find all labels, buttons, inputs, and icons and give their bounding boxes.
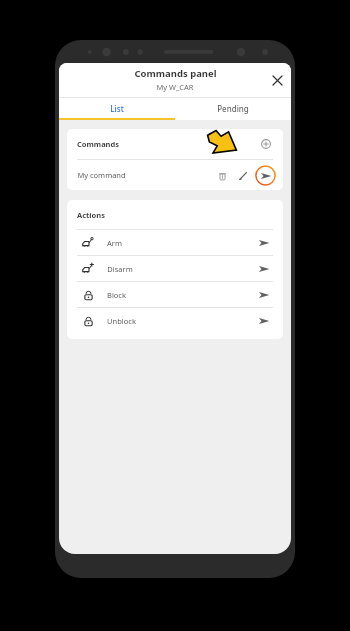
button[interactable]: Add command: [257, 135, 275, 153]
other: Send Unblock: [255, 312, 273, 330]
staticText: List: [110, 103, 124, 114]
staticText: My W_CAR: [156, 82, 194, 92]
button[interactable]: Edit: [235, 168, 251, 184]
staticText: My command: [77, 170, 126, 180]
staticText: Commands panel: [134, 67, 217, 80]
other: Send Block: [255, 286, 273, 304]
other: Send Disarm: [255, 260, 273, 278]
staticText: Block: [107, 290, 126, 300]
button[interactable]: Disarm: [67, 256, 283, 281]
button[interactable]: List: [59, 98, 175, 118]
staticText: Arm: [107, 238, 122, 248]
button[interactable]: Close: [267, 70, 287, 90]
button[interactable]: Arm: [67, 230, 283, 255]
button[interactable]: Pending: [175, 98, 291, 118]
button[interactable]: Delete: [214, 168, 230, 184]
other: Send Arm: [255, 234, 273, 252]
button[interactable]: My command: [67, 160, 283, 190]
button[interactable]: Block: [67, 282, 283, 307]
button[interactable]: Unblock: [67, 308, 283, 333]
staticText: Unblock: [107, 316, 136, 326]
staticText: Actions: [77, 210, 105, 220]
staticText: Commands: [77, 139, 119, 149]
staticText: Pending: [217, 103, 249, 114]
button[interactable]: Send command: [255, 165, 276, 186]
staticText: Disarm: [107, 264, 133, 274]
